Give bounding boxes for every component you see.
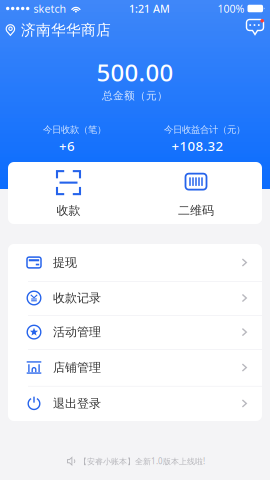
- staticText: 活动管理: [53, 325, 101, 339]
- staticText: 今日收款（笔）: [43, 124, 106, 135]
- staticText: 今日收益合计（元）: [164, 124, 245, 135]
- button[interactable]: 店铺管理: [8, 349, 262, 386]
- button[interactable]: 收款记录: [8, 281, 262, 315]
- staticText: 店铺管理: [53, 360, 101, 375]
- staticText: +6: [59, 137, 75, 155]
- staticText: 提现: [53, 255, 77, 270]
- staticText: +108.32: [171, 137, 223, 155]
- staticText: 收款: [56, 203, 80, 218]
- staticText: 收款记录: [53, 291, 101, 305]
- button[interactable]: 济南华华商店: [0, 17, 119, 43]
- button[interactable]: 消息: [238, 18, 270, 42]
- staticText: 500.00: [96, 56, 173, 88]
- button[interactable]: 收款: [8, 162, 135, 224]
- staticText: 100%: [217, 1, 244, 16]
- staticText: 1:21 AM: [129, 1, 170, 16]
- button[interactable]: 提现: [8, 244, 262, 281]
- staticText: 二维码: [178, 203, 214, 218]
- button[interactable]: 活动管理: [8, 315, 262, 349]
- staticText: sketch: [33, 1, 66, 16]
- staticText: 总金额（元）: [102, 89, 168, 102]
- button[interactable]: 二维码: [135, 162, 262, 224]
- button[interactable]: 退出登录: [8, 386, 262, 421]
- staticText: 退出登录: [53, 396, 101, 411]
- staticText: 【安睿小账本】全新1.0版本上线啦!: [79, 456, 205, 466]
- staticText: 济南华华商店: [21, 21, 111, 39]
